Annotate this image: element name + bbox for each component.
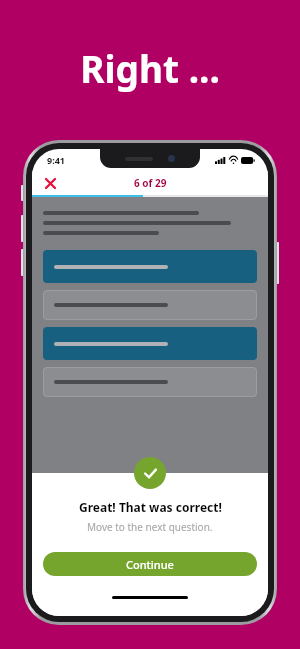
button[interactable] xyxy=(43,250,257,283)
staticText: Move to the next question. xyxy=(87,520,213,534)
staticText: 6 of 29 xyxy=(134,176,167,190)
staticText: Continue xyxy=(126,557,174,572)
button[interactable]: Close xyxy=(39,172,61,194)
button[interactable]: Continue xyxy=(43,552,257,576)
staticText: Great! That was correct! xyxy=(79,499,222,515)
button[interactable] xyxy=(43,290,257,320)
button[interactable] xyxy=(43,327,257,360)
button[interactable] xyxy=(43,367,257,397)
staticText: 9:41 xyxy=(47,154,65,166)
staticText: Right ... xyxy=(0,43,300,93)
